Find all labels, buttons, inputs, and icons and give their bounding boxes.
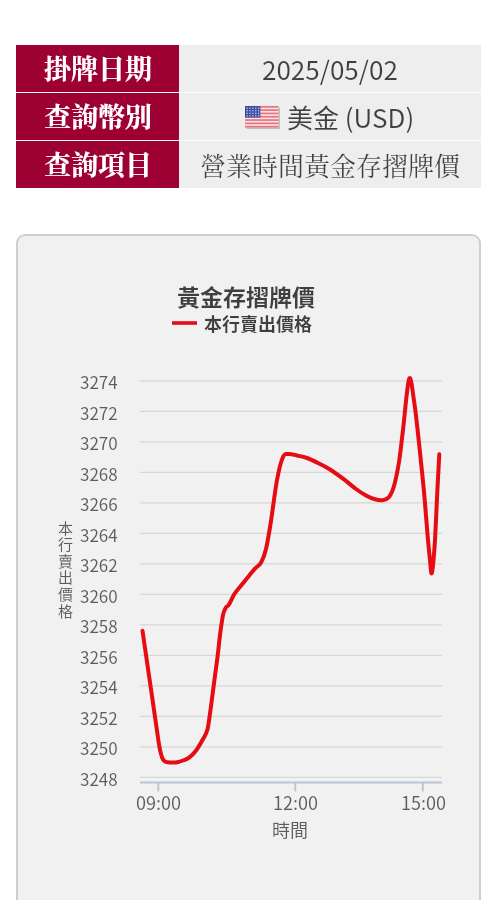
staticText: 3266 bbox=[80, 491, 118, 516]
button[interactable] bbox=[16, 234, 481, 900]
staticText: 3254 bbox=[80, 674, 118, 699]
staticText: 黃金存摺牌價 bbox=[177, 279, 315, 312]
staticText: 本行賣出價格 bbox=[204, 310, 312, 336]
staticText: 賣 bbox=[58, 550, 74, 572]
staticText: 時間 bbox=[272, 816, 308, 842]
staticText: 查詢幣別 bbox=[44, 96, 152, 135]
button[interactable]: 掛牌日期 bbox=[16, 45, 179, 92]
staticText: 價 bbox=[58, 583, 74, 605]
staticText: 3258 bbox=[80, 613, 118, 638]
staticText: 本 bbox=[58, 517, 74, 539]
staticText: 3270 bbox=[80, 430, 118, 455]
staticText: 12:00 bbox=[273, 789, 318, 815]
staticText: 3268 bbox=[80, 461, 118, 486]
staticText: 查詢項目 bbox=[44, 144, 152, 183]
staticText: 3256 bbox=[80, 644, 118, 669]
staticText: 3272 bbox=[80, 400, 118, 425]
other: United States flag bbox=[245, 106, 280, 129]
staticText: 3274 bbox=[80, 369, 118, 394]
staticText: 掛牌日期 bbox=[44, 48, 152, 87]
staticText: 3262 bbox=[80, 552, 118, 577]
staticText: 2025/05/02 bbox=[262, 50, 398, 88]
staticText: 行 bbox=[58, 533, 74, 555]
staticText: 出 bbox=[58, 566, 74, 588]
staticText: 15:00 bbox=[401, 789, 446, 815]
staticText: 營業時間黃金存摺牌價 bbox=[200, 146, 461, 183]
staticText: 3248 bbox=[80, 766, 118, 791]
staticText: 3252 bbox=[80, 705, 118, 730]
staticText: 3260 bbox=[80, 583, 118, 608]
staticText: 3250 bbox=[80, 735, 118, 760]
button[interactable]: 查詢幣別 bbox=[16, 93, 179, 140]
staticText: 09:00 bbox=[136, 789, 181, 815]
button[interactable]: 查詢項目 bbox=[16, 141, 179, 188]
staticText: 3264 bbox=[80, 522, 118, 547]
staticText: 格 bbox=[58, 600, 74, 622]
staticText: 美金 (USD) bbox=[287, 98, 415, 136]
